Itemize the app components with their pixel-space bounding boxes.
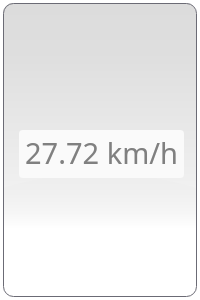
button[interactable]: Current speed 27.72 kilometres per hour xyxy=(19,130,184,178)
staticText: 27.72 km/h xyxy=(25,133,178,172)
button[interactable]: Current speed 27.72 kilometres per hour xyxy=(3,3,196,296)
